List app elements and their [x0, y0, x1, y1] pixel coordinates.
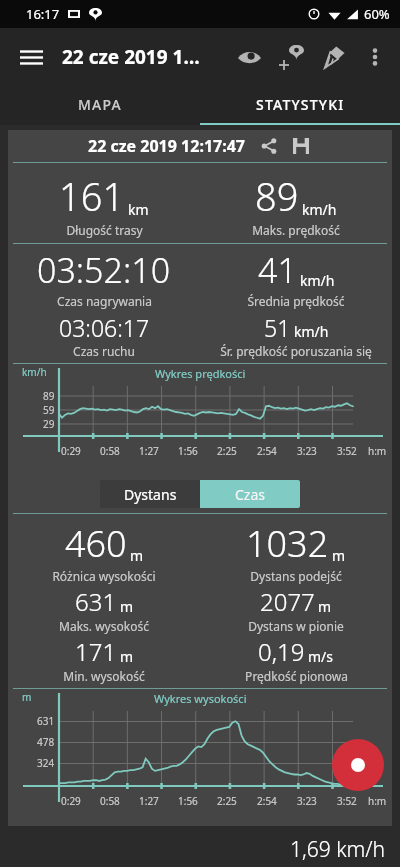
staticText: 3:52 [337, 794, 357, 808]
staticText: 41 [258, 247, 297, 293]
button[interactable]: Clear track [312, 36, 354, 78]
staticText: Średnia prędkość [247, 293, 345, 309]
staticText: Dystans [124, 485, 177, 504]
staticText: 2:54 [257, 444, 277, 458]
button[interactable]: Add marker [270, 36, 312, 78]
staticText: m [120, 597, 134, 616]
button[interactable]: STATYSTYKI [200, 85, 400, 123]
staticText: 59 [43, 403, 55, 417]
staticText: 03:52:10 [37, 247, 171, 293]
staticText: Maks. wysokość [59, 618, 149, 634]
staticText: 0:58 [100, 794, 120, 808]
staticText: km/h [300, 271, 335, 290]
staticText: 2077 [260, 585, 315, 618]
staticText: km/h [302, 200, 337, 219]
button[interactable]: Dystans [100, 480, 200, 508]
staticText: 0:29 [61, 444, 81, 458]
staticText: m [22, 690, 32, 704]
staticText: Maks. prędkość [252, 222, 340, 238]
staticText: 03:06:17 [59, 312, 150, 343]
staticText: 1:27 [139, 794, 159, 808]
staticText: 1:56 [178, 444, 198, 458]
staticText: 29 [43, 417, 55, 431]
staticText: 2:54 [257, 794, 277, 808]
staticText: h:m [368, 794, 387, 808]
staticText: 1,69 km/h [290, 835, 386, 864]
staticText: 631 [75, 585, 117, 618]
button[interactable]: Show track [228, 36, 270, 78]
staticText: 60% [364, 5, 390, 23]
staticText: 0,19 [258, 635, 305, 668]
staticText: Wykres wysokości [154, 691, 247, 706]
button[interactable]: Share [257, 134, 281, 158]
staticText: Czas [235, 485, 265, 504]
staticText: Min. wysokość [63, 668, 145, 684]
staticText: 161 [59, 170, 125, 222]
staticText: 51 [264, 312, 291, 343]
staticText: 2:25 [217, 444, 237, 458]
button[interactable]: Czas [200, 480, 300, 508]
staticText: 89 [43, 389, 55, 403]
staticText: h:m [368, 444, 387, 458]
staticText: m/s [308, 647, 334, 666]
staticText: Czas ruchu [73, 343, 135, 359]
staticText: 1:27 [139, 444, 159, 458]
button[interactable]: MAPA [0, 85, 200, 123]
staticText: 171 [75, 635, 117, 668]
staticText: 460 [65, 519, 127, 568]
staticText: 3:23 [297, 444, 317, 458]
staticText: Różnica wysokości [52, 568, 156, 584]
button[interactable]: Save [289, 134, 313, 158]
staticText: 0:58 [100, 444, 120, 458]
staticText: 1:56 [178, 794, 198, 808]
staticText: 3:23 [297, 794, 317, 808]
staticText: 22 cze 2019 12:17:47 [88, 135, 245, 157]
staticText: m [318, 597, 332, 616]
staticText: km/h [294, 322, 329, 341]
staticText: Dystans podejść [250, 568, 342, 584]
staticText: 22 cze 2019 1… [62, 44, 200, 70]
staticText: 0:29 [61, 794, 81, 808]
staticText: STATYSTYKI [256, 95, 345, 114]
staticText: 16:17 [26, 5, 60, 23]
staticText: km/h [22, 365, 47, 379]
staticText: 3:52 [337, 444, 357, 458]
staticText: 1032 [246, 519, 329, 568]
staticText: 631 [37, 714, 55, 728]
staticText: Dystans w pionie [248, 618, 344, 634]
button[interactable]: Menu [10, 36, 52, 78]
staticText: Wykres prędkości [155, 366, 246, 381]
staticText: m [332, 546, 346, 565]
staticText: MAPA [78, 95, 122, 114]
staticText: km [128, 200, 149, 219]
staticText: 478 [37, 735, 55, 749]
button[interactable]: Record [332, 739, 384, 791]
staticText: m [130, 546, 144, 565]
staticText: 324 [37, 756, 55, 770]
staticText: 89 [255, 170, 299, 222]
staticText: Czas nagrywania [57, 293, 152, 309]
staticText: Śr. prędkość poruszania się [220, 343, 372, 359]
staticText: 2:25 [217, 794, 237, 808]
button[interactable]: More options [354, 36, 396, 78]
staticText: Długość trasy [66, 222, 143, 238]
staticText: m [120, 647, 134, 666]
staticText: Prędkość pionowa [245, 668, 348, 684]
